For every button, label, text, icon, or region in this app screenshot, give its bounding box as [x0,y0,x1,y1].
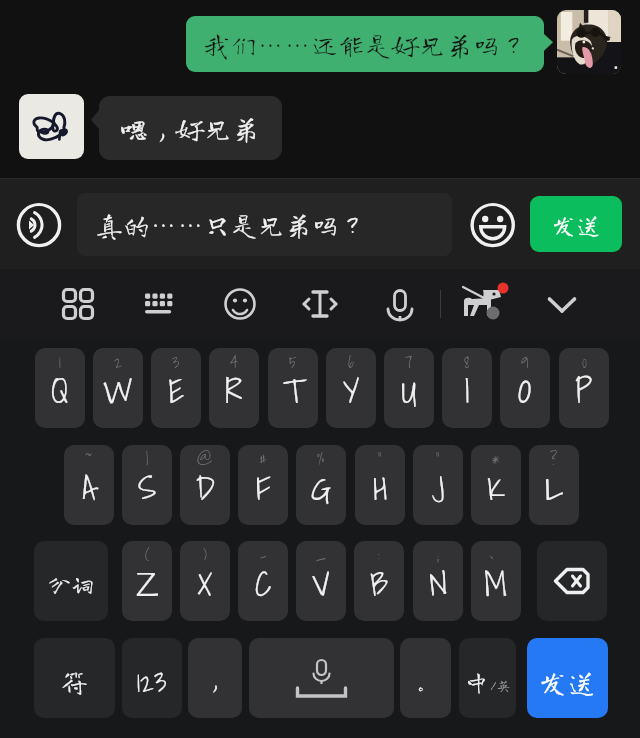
staticText: 中 [464,669,490,694]
button[interactable]: * [471,445,521,525]
staticText: A [82,460,96,515]
staticText: 6 [348,349,354,375]
staticText: Q [51,363,69,418]
staticText: 0 [582,349,587,375]
staticText: | [146,446,149,472]
button[interactable]: Sponsored [458,280,506,328]
button[interactable]: % [296,445,346,525]
button[interactable]: 我们……还能是好兄弟吗？ [186,16,544,72]
staticText: P [575,363,593,418]
button[interactable]: _ [296,541,346,621]
button[interactable]: @ [180,445,230,525]
button[interactable]: Profile photo [19,94,84,159]
staticText: 7 [405,349,413,375]
button[interactable]: 1 [35,348,85,428]
staticText: @ [197,446,213,472]
staticText: 分词 [48,573,94,596]
button[interactable]: “ [355,445,405,525]
button[interactable]: ? [529,445,579,525]
button[interactable]: 发送 [527,638,608,718]
staticText: 123 [137,660,167,703]
button[interactable]: # [238,445,288,525]
button[interactable]: Stickers [216,280,264,328]
button[interactable]: ; [413,541,463,621]
staticText: ; [437,542,439,568]
staticText: I [464,363,470,418]
staticText: M [484,556,508,611]
staticText: /英 [490,678,512,693]
button[interactable]: 9 [500,348,550,428]
button[interactable]: 。 [400,638,451,718]
staticText: B [370,556,389,611]
staticText: 符 [61,668,88,695]
button[interactable]: Backspace [537,541,607,621]
button[interactable]: 2 [93,348,143,428]
button[interactable]: 嗯，好兄弟 [99,96,282,160]
button[interactable]: 分词 [34,541,108,621]
button[interactable]: Edit text [296,280,344,328]
button[interactable]: : [354,541,404,621]
button[interactable]: 、 [471,541,521,621]
button[interactable]: 发送 [530,196,622,252]
button[interactable]: ” [413,445,463,525]
button[interactable]: 3 [151,348,201,428]
button[interactable]: 8 [442,348,492,428]
button[interactable]: Apps [54,280,102,328]
staticText: 3 [172,349,180,375]
button[interactable]: 真的……只是兄弟吗？ [77,193,452,256]
button[interactable]: Keyboard layout [135,280,183,328]
button[interactable]: Emoji [470,203,516,249]
staticText: L [545,460,564,515]
button[interactable]: 4 [209,348,259,428]
staticText: X [197,556,213,611]
staticText: T [283,363,304,418]
button[interactable]: Profile photo [557,10,621,74]
button[interactable]: 5 [268,348,318,428]
staticText: 真的……只是兄弟吗？ [96,211,366,238]
staticText: 发送 [551,212,602,237]
button[interactable]: - [238,541,288,621]
staticText: 发送 [538,667,597,696]
button[interactable]: 中 [459,638,516,718]
staticText: ， [203,669,227,693]
staticText: F [256,460,271,515]
staticText: D [196,460,215,515]
button[interactable]: Voice input [376,280,424,328]
button[interactable]: Space [249,638,394,718]
staticText: S [138,460,157,515]
staticText: H [373,460,388,515]
staticText: ( [145,542,150,568]
staticText: 、 [488,542,504,562]
staticText: 9 [521,349,529,375]
button[interactable]: ( [122,541,172,621]
button[interactable]: Hide keyboard [538,280,586,328]
button[interactable]: 6 [326,348,376,428]
staticText: O [518,363,532,418]
staticText: 1 [59,349,61,375]
button[interactable]: 0 [559,348,609,428]
staticText: E [168,363,185,418]
staticText: W [103,363,133,418]
staticText: 5 [289,349,297,375]
button[interactable]: ~ [64,445,114,525]
staticText: 8 [464,349,470,375]
staticText: R [225,363,243,418]
staticText: 4 [230,349,239,375]
staticText: ) [203,542,207,568]
button[interactable]: 123 [122,638,182,718]
staticText: U [401,363,417,418]
staticText: Y [343,363,360,418]
staticText: 我们……还能是好兄弟吗？ [203,31,527,58]
staticText: ? [550,446,558,472]
staticText: 嗯，好兄弟 [120,114,261,142]
staticText: Z [136,556,159,611]
button[interactable]: ) [180,541,230,621]
staticText: N [429,556,448,611]
button[interactable]: Voice input [16,203,62,249]
button[interactable]: 符 [34,638,115,718]
button[interactable]: ， [188,638,242,718]
staticText: G [311,460,332,515]
button[interactable]: | [122,445,172,525]
button[interactable]: 7 [384,348,434,428]
staticText: # [259,446,267,472]
